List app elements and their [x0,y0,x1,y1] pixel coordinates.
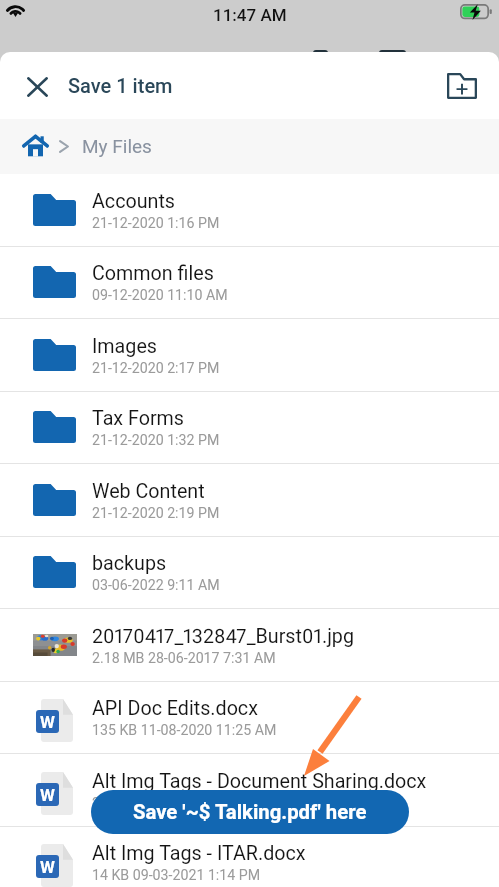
staticText: 11:47 AM [213,5,287,25]
button[interactable]: New folder [438,62,486,110]
button[interactable]: Tax Forms [0,391,499,464]
other: Wi-Fi [5,2,26,17]
staticText: 214 KB 13-10-2021 3:07 PM [92,795,269,812]
button[interactable]: Home [12,124,58,170]
staticText: W [40,785,55,805]
button[interactable]: Close [13,62,61,110]
staticText: 03-06-2022 9:11 AM [92,577,220,594]
staticText: backups [92,552,167,575]
staticText: Save 1 item [68,74,173,97]
button[interactable]: W [0,681,499,754]
staticText: 09-12-2020 11:10 AM [92,287,228,304]
button[interactable]: My Files [82,135,152,157]
button[interactable]: 20170417_132847_Burst01.jpg [0,609,499,682]
button[interactable]: Images [0,319,499,392]
staticText: 21-12-2020 2:19 PM [92,505,220,522]
staticText: Alt Img Tags - ITAR.docx [92,842,306,865]
staticText: Accounts [92,190,176,213]
staticText: 21-12-2020 1:16 PM [92,215,220,232]
button[interactable]: Common files [0,246,499,319]
other: Battery charging [460,4,492,21]
staticText: 21-12-2020 2:17 PM [92,360,220,377]
staticText: 20170417_132847_Burst01.jpg [92,625,354,648]
staticText: 135 KB 11-08-2020 11:25 AM [92,722,277,739]
button[interactable]: Accounts [0,174,499,247]
staticText: Tax Forms [92,407,185,430]
button[interactable]: backups [0,536,499,609]
staticText: API Doc Edits.docx [92,697,258,720]
staticText: 2.18 MB 28-06-2017 7:31 AM [92,650,276,667]
button[interactable]: Web Content [0,464,499,537]
staticText: W [40,712,55,732]
staticText: Images [92,335,157,358]
button[interactable]: W [0,754,499,827]
staticText: Save '~$ Talking.pdf' here [133,800,367,824]
staticText: Common files [92,262,214,285]
button[interactable]: Save '~$ Talking.pdf' here [91,790,409,834]
staticText: Web Content [92,480,205,503]
staticText: 21-12-2020 1:32 PM [92,432,220,449]
staticText: 14 KB 09-03-2021 1:14 PM [92,867,261,884]
staticText: Alt Img Tags - Document Sharing.docx [92,770,427,793]
staticText: W [40,857,55,877]
button[interactable]: W [0,826,499,887]
